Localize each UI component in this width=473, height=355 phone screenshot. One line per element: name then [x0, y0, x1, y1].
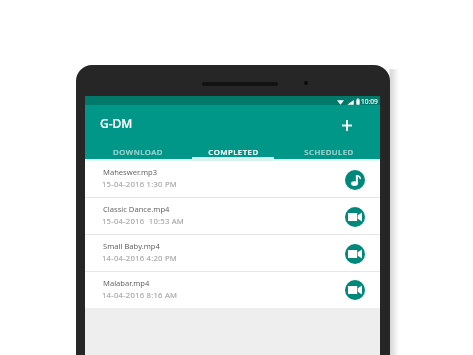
staticText: Small Baby.mp4 [103, 241, 160, 251]
staticText: DOWNLOAD [113, 147, 163, 158]
staticText: 10:09 [361, 97, 378, 106]
button[interactable]: Small Baby.mp4 [85, 235, 380, 272]
staticText: 15-04-2016 10:53 AM [102, 216, 185, 226]
button[interactable]: Play video [345, 280, 365, 300]
button[interactable]: Malabar.mp4 [85, 272, 380, 308]
staticText: Maheswer.mp3 [103, 167, 158, 177]
staticText: Classic Dance.mp4 [103, 204, 170, 214]
staticText: 15-04-2016 1:30 PM [102, 179, 177, 189]
button[interactable]: DOWNLOAD [90, 141, 185, 161]
button[interactable]: SCHEDULED [281, 141, 377, 161]
button[interactable]: Classic Dance.mp4 [85, 198, 380, 235]
staticText: COMPLETED [208, 147, 259, 158]
staticText: SCHEDULED [304, 147, 354, 158]
button[interactable]: Maheswer.mp3 [85, 161, 380, 198]
button[interactable]: COMPLETED [185, 141, 281, 161]
button[interactable]: Play video [345, 244, 365, 264]
staticText: 14-04-2016 4:20 PM [102, 253, 177, 263]
staticText: G-DM [100, 115, 133, 131]
button[interactable]: Add download [336, 114, 358, 136]
staticText: Malabar.mp4 [103, 278, 150, 288]
staticText: 14-04-2016 8:16 AM [102, 290, 178, 300]
button[interactable]: Play video [345, 207, 365, 227]
button[interactable]: Play audio [345, 170, 365, 190]
